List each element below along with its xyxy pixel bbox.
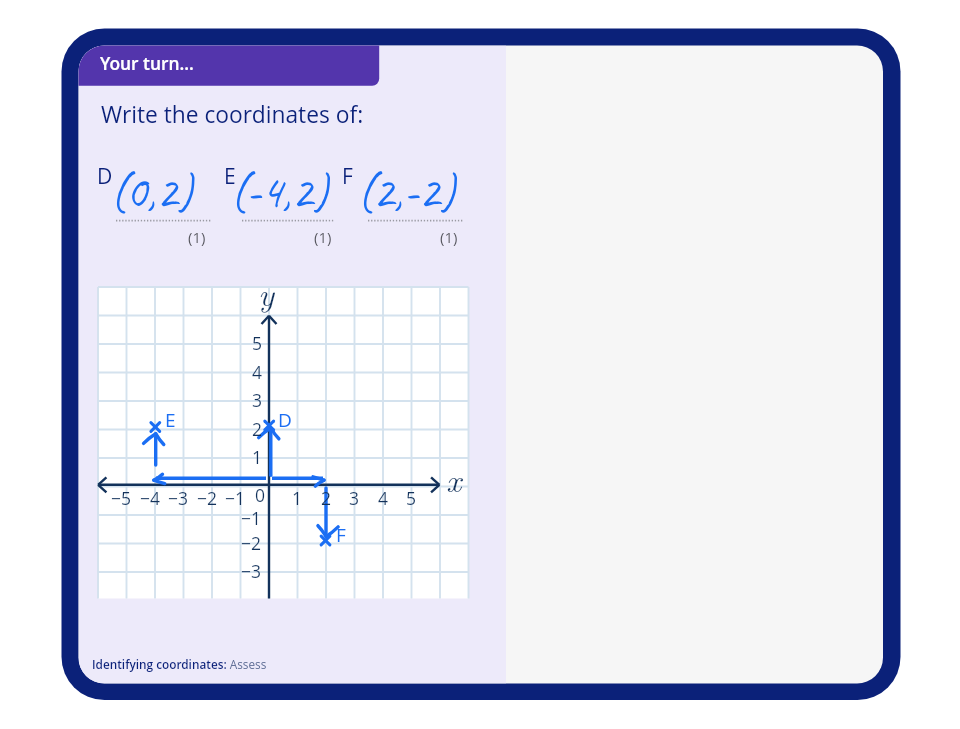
staticText: 2 <box>252 417 263 441</box>
staticText: −5 <box>111 486 132 510</box>
staticText: 2 <box>321 486 332 510</box>
staticText: Identifying coordinates: Assess <box>92 656 267 672</box>
staticText: 5 <box>406 486 417 510</box>
staticText: 5 <box>252 331 263 355</box>
staticText: −3 <box>168 486 189 510</box>
staticText: D <box>278 407 292 433</box>
staticText: Write the coordinates of: <box>101 99 364 130</box>
staticText: x <box>446 455 462 502</box>
staticText: (2,-2) <box>357 162 455 221</box>
staticText: (1) <box>314 227 332 247</box>
staticText: (-4,2) <box>230 162 328 221</box>
staticText: F <box>336 522 346 548</box>
staticText: D <box>97 162 113 191</box>
staticText: (0,2) <box>110 162 193 221</box>
staticText: −1 <box>225 486 246 510</box>
button[interactable]: Answer for point E <box>222 162 337 248</box>
staticText: −2 <box>241 531 262 555</box>
staticText: Your turn... <box>100 51 194 75</box>
staticText: −1 <box>241 506 262 530</box>
staticText: E <box>224 162 236 191</box>
button[interactable]: Your turn... <box>79 46 380 86</box>
staticText: −2 <box>197 486 218 510</box>
staticText: (1) <box>188 227 206 247</box>
staticText: 4 <box>252 360 263 384</box>
staticText: 1 <box>252 445 263 469</box>
button[interactable]: Answer for point F <box>340 162 464 248</box>
staticText: E <box>165 407 176 433</box>
staticText: 0 <box>255 483 266 507</box>
staticText: 4 <box>378 486 389 510</box>
staticText: −3 <box>241 559 262 583</box>
button[interactable]: Answer for point D <box>95 162 212 248</box>
staticText: 3 <box>252 388 263 412</box>
staticText: F <box>342 162 353 191</box>
staticText: 3 <box>349 486 360 510</box>
staticText: 1 <box>292 486 303 510</box>
staticText: −4 <box>140 486 161 510</box>
button[interactable]: Identifying coordinates: Assess <box>88 648 288 678</box>
staticText: y <box>258 269 275 316</box>
staticText: (1) <box>440 227 458 247</box>
